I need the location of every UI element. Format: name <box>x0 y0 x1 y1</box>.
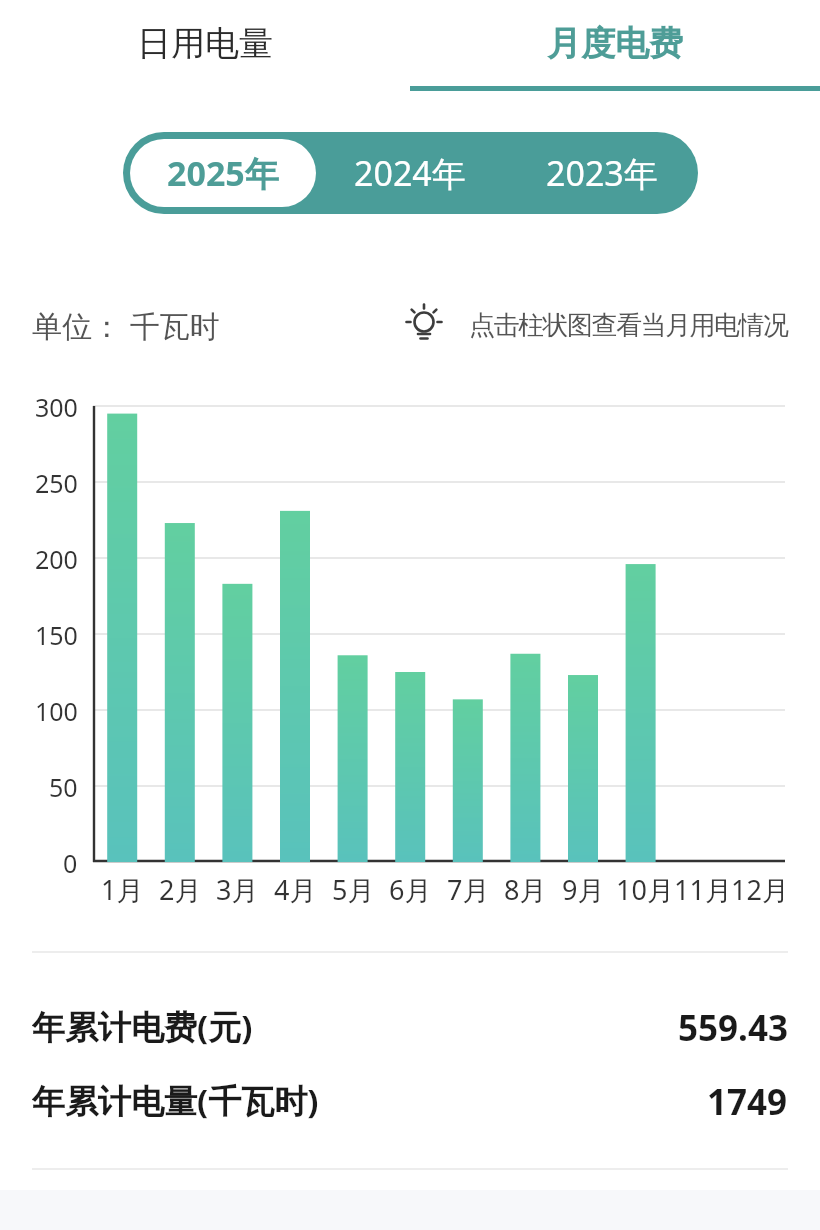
staticText: 4月 <box>274 871 317 905</box>
staticText: 6月 <box>389 871 432 905</box>
staticText: 250 <box>35 466 78 498</box>
staticText: 9月 <box>562 871 605 905</box>
button[interactable]: 2025年 <box>130 139 316 207</box>
staticText: 单位： 千瓦时 <box>32 305 220 346</box>
staticText: 年累计电量(千瓦时) <box>32 1078 319 1120</box>
staticText: 10月 <box>616 871 674 905</box>
staticText: 50 <box>49 770 78 802</box>
staticText: 2023年 <box>546 150 658 196</box>
staticText: 300 <box>35 390 78 422</box>
staticText: 年累计电费(元) <box>32 1004 253 1046</box>
staticText: 8月 <box>504 871 547 905</box>
staticText: 2月 <box>159 871 202 905</box>
staticText: 1月 <box>101 871 144 905</box>
staticText: 0 <box>63 846 78 878</box>
staticText: 5月 <box>332 871 375 905</box>
staticText: 100 <box>35 694 78 726</box>
staticText: 200 <box>35 542 78 574</box>
staticText: 11月 <box>674 871 732 905</box>
button[interactable]: 月度电费 <box>410 0 820 86</box>
staticText: 7月 <box>447 871 490 905</box>
staticText: 1749 <box>707 1078 788 1120</box>
staticText: 3月 <box>216 871 259 905</box>
staticText: 点击柱状图查看当月用电情况 <box>469 309 788 342</box>
staticText: 559.43 <box>678 1004 788 1046</box>
button[interactable]: 2023年 <box>506 132 698 214</box>
staticText: 12月 <box>731 871 789 905</box>
staticText: 2025年 <box>167 150 279 196</box>
staticText: 月度电费 <box>547 22 683 65</box>
button[interactable]: 2024年 <box>314 132 506 214</box>
button[interactable]: 日用电量 <box>0 0 410 86</box>
staticText: 日用电量 <box>137 22 273 65</box>
staticText: 2024年 <box>354 150 466 196</box>
staticText: 150 <box>35 618 78 650</box>
